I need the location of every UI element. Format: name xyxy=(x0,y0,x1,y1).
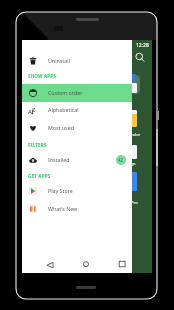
button[interactable]: Home xyxy=(82,260,90,268)
staticText: nder xyxy=(131,132,141,138)
staticText: Custom order xyxy=(48,89,83,96)
staticText: Uninstall xyxy=(48,57,70,64)
button[interactable]: Search xyxy=(135,52,146,63)
staticText: Alphabetical xyxy=(48,106,79,113)
staticText: GET APPS xyxy=(28,173,51,179)
button[interactable]: Uninstall xyxy=(22,52,132,69)
staticText: What's New xyxy=(48,205,78,212)
staticText: Installed xyxy=(48,156,70,163)
button[interactable]: A xyxy=(22,101,132,118)
button[interactable]: Back xyxy=(46,261,54,269)
staticText: 12:28 xyxy=(136,42,149,49)
staticText: gs xyxy=(131,161,136,167)
button[interactable]: Most used xyxy=(22,119,132,136)
staticText: 42 xyxy=(118,157,124,163)
button[interactable]: Custom order xyxy=(22,84,132,101)
staticText: SHOW APPS xyxy=(28,73,57,79)
staticText: FILTERS xyxy=(28,142,47,148)
button[interactable]: What's New xyxy=(22,200,132,217)
staticText: Pro xyxy=(131,200,138,206)
staticText: Z xyxy=(32,106,36,114)
staticText: Most used xyxy=(48,124,74,131)
button[interactable]: Installed xyxy=(22,151,132,168)
staticText: A xyxy=(28,108,32,116)
button[interactable]: Play Store xyxy=(22,182,132,199)
staticText: Play Store xyxy=(48,187,73,194)
button[interactable]: Recents xyxy=(118,260,126,268)
